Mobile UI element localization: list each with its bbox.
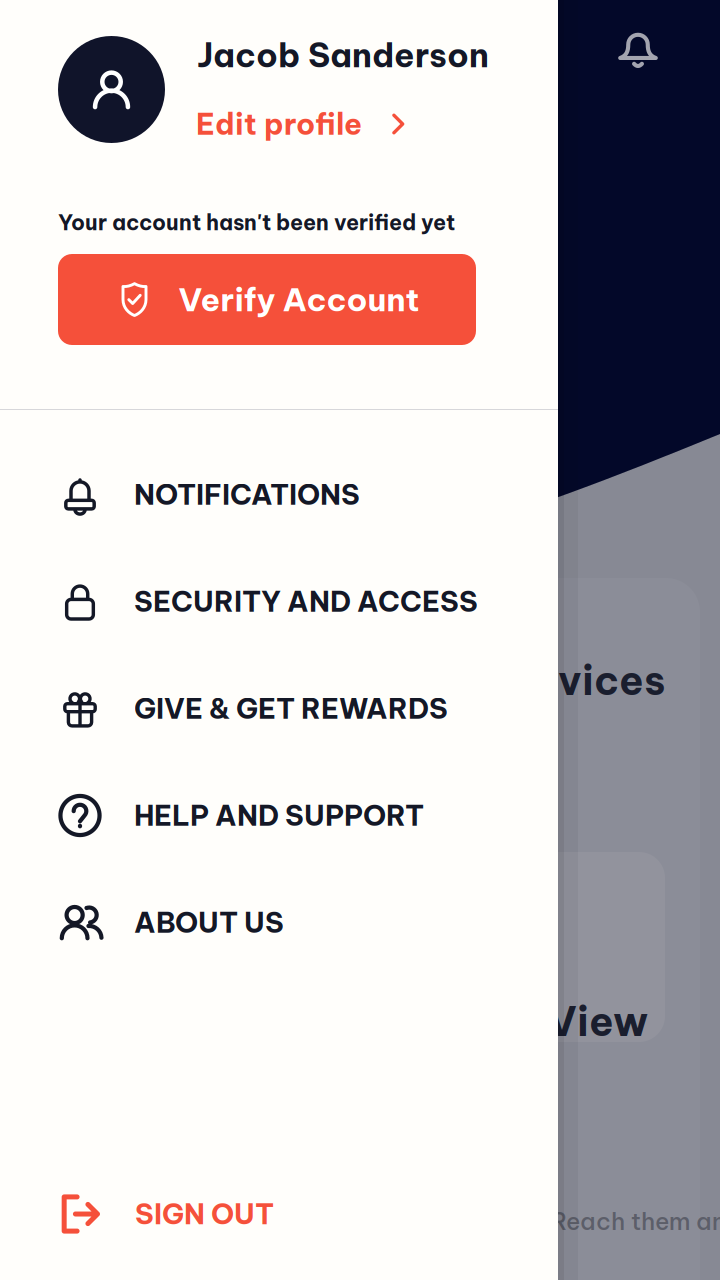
button[interactable]: SIGN OUT [0,1172,558,1256]
staticText: Edit profile [196,105,362,142]
staticText: ABOUT US [134,905,284,940]
staticText: Our Services [406,655,665,706]
staticText: NOTIFICATIONS [134,477,360,512]
button[interactable]: ABOUT US [0,869,558,976]
staticText: View [547,996,648,1047]
staticText: Jacob Sanderson [197,34,489,76]
button[interactable]: Edit profile [196,102,412,146]
button[interactable]: HELP AND SUPPORT [0,762,558,869]
button[interactable]: Verify Account [58,254,476,345]
staticText: HELP AND SUPPORT [134,798,424,833]
button[interactable]: SECURITY AND ACCESS [0,548,558,655]
staticText: SIGN OUT [135,1196,274,1232]
staticText: Your account hasn't been verified yet [58,209,455,236]
button[interactable]: GIVE & GET REWARDS [0,655,558,762]
staticText: GIVE & GET REWARDS [134,691,448,726]
staticText: SECURITY AND ACCESS [134,584,478,619]
staticText: Reach them anytime... [551,1206,720,1236]
button[interactable]: NOTIFICATIONS [0,441,558,548]
staticText: Verify Account [178,279,419,320]
